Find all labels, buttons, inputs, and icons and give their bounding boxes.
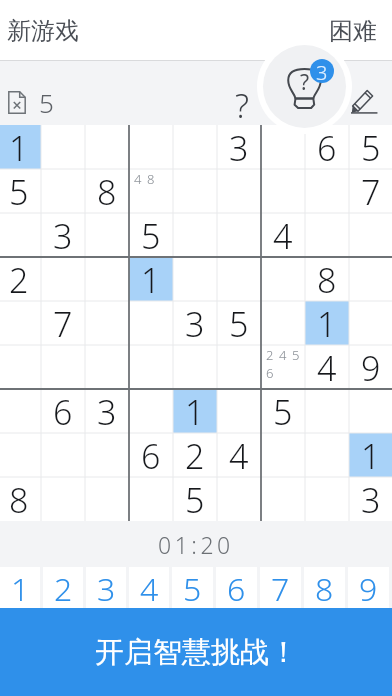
button[interactable]: 1: [129, 257, 173, 301]
button[interactable]: 4: [129, 567, 169, 608]
button[interactable]: 4: [129, 169, 173, 213]
button[interactable]: 8: [85, 169, 129, 213]
button[interactable]: 新游戏: [0, 0, 89, 61]
button[interactable]: 5: [261, 389, 305, 433]
button[interactable]: [0, 389, 41, 433]
button[interactable]: 开启智慧挑战！: [0, 608, 392, 696]
button[interactable]: 1: [0, 125, 41, 169]
button[interactable]: 3: [173, 301, 217, 345]
button[interactable]: [349, 257, 392, 301]
button[interactable]: 5: [349, 125, 392, 169]
button[interactable]: 6: [129, 433, 173, 477]
button[interactable]: 3: [349, 477, 392, 521]
button[interactable]: [261, 477, 305, 521]
button[interactable]: [41, 433, 85, 477]
button[interactable]: 3: [41, 213, 85, 257]
button[interactable]: 2: [261, 345, 305, 389]
button[interactable]: [305, 389, 349, 433]
button[interactable]: 5: [0, 169, 41, 213]
button[interactable]: 4: [305, 345, 349, 389]
button[interactable]: 8: [304, 567, 345, 608]
button[interactable]: [41, 345, 85, 389]
button[interactable]: [349, 389, 392, 433]
button[interactable]: [217, 345, 261, 389]
button[interactable]: [41, 257, 85, 301]
button[interactable]: 2: [43, 567, 83, 608]
button[interactable]: [349, 213, 392, 257]
button[interactable]: [85, 257, 129, 301]
button[interactable]: [85, 301, 129, 345]
button[interactable]: [217, 169, 261, 213]
button[interactable]: Help: [224, 83, 260, 119]
button[interactable]: [85, 345, 129, 389]
button[interactable]: [217, 213, 261, 257]
button[interactable]: [305, 433, 349, 477]
button[interactable]: [173, 257, 217, 301]
button[interactable]: [85, 477, 129, 521]
button[interactable]: 3: [85, 389, 129, 433]
button[interactable]: [261, 433, 305, 477]
button[interactable]: 6: [305, 125, 349, 169]
button[interactable]: 3: [86, 567, 126, 608]
button[interactable]: [173, 169, 217, 213]
button[interactable]: 5: [173, 477, 217, 521]
button[interactable]: [217, 257, 261, 301]
button[interactable]: [305, 169, 349, 213]
button[interactable]: 4: [261, 213, 305, 257]
button[interactable]: [129, 345, 173, 389]
button[interactable]: 2: [0, 257, 41, 301]
button[interactable]: 2: [173, 433, 217, 477]
button[interactable]: [0, 213, 41, 257]
button[interactable]: 1: [305, 301, 349, 345]
button[interactable]: 7: [349, 169, 392, 213]
button[interactable]: [85, 433, 129, 477]
button[interactable]: 8: [0, 477, 41, 521]
button[interactable]: [261, 125, 305, 169]
button[interactable]: [173, 345, 217, 389]
button[interactable]: [173, 213, 217, 257]
button[interactable]: 1: [349, 433, 392, 477]
button[interactable]: 5: [0, 79, 62, 125]
button[interactable]: 9: [348, 567, 389, 608]
button[interactable]: 7: [260, 567, 301, 608]
button[interactable]: 9: [349, 345, 392, 389]
button[interactable]: 5: [217, 301, 261, 345]
button[interactable]: 4: [217, 433, 261, 477]
staticText: 3: [316, 59, 328, 83]
button[interactable]: [129, 301, 173, 345]
button[interactable]: Notes: [345, 81, 383, 119]
button[interactable]: [217, 389, 261, 433]
staticText: ?: [300, 68, 310, 97]
button[interactable]: 6: [41, 389, 85, 433]
button[interactable]: [305, 213, 349, 257]
button[interactable]: [129, 389, 173, 433]
staticText: 6: [227, 567, 246, 608]
button[interactable]: [261, 257, 305, 301]
button[interactable]: 5: [172, 567, 213, 608]
button[interactable]: 3: [217, 125, 261, 169]
button[interactable]: [129, 125, 173, 169]
button[interactable]: [41, 169, 85, 213]
button[interactable]: Hint: [257, 39, 352, 134]
button[interactable]: [129, 477, 173, 521]
button[interactable]: [261, 301, 305, 345]
button[interactable]: [0, 345, 41, 389]
button[interactable]: 5: [129, 213, 173, 257]
button[interactable]: 困难: [319, 0, 392, 61]
button[interactable]: 1: [0, 567, 40, 608]
button[interactable]: [261, 169, 305, 213]
button[interactable]: 6: [216, 567, 257, 608]
button[interactable]: [85, 125, 129, 169]
button[interactable]: 7: [41, 301, 85, 345]
button[interactable]: 8: [305, 257, 349, 301]
button[interactable]: 1: [173, 389, 217, 433]
button[interactable]: [217, 477, 261, 521]
button[interactable]: [85, 213, 129, 257]
